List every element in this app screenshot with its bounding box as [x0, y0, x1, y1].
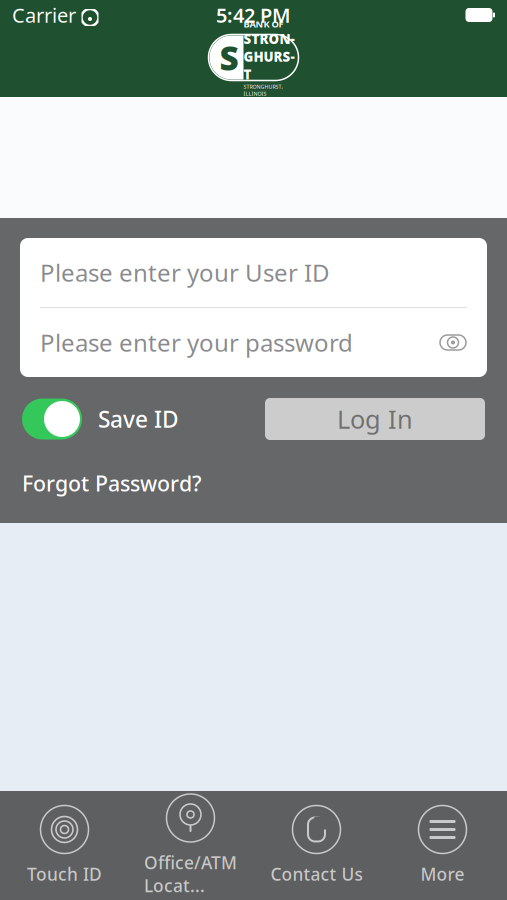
staticText: Touch ID [27, 862, 102, 885]
button[interactable]: Office/ATM Locat... [127, 800, 253, 890]
button[interactable]: Touch ID [1, 800, 127, 890]
button[interactable]: Please enter your User ID [20, 238, 487, 307]
staticText: Please enter your password [40, 327, 353, 358]
button[interactable]: Please enter your password [20, 308, 487, 377]
staticText: More [420, 862, 464, 885]
button[interactable]: Forgot Password? [22, 469, 202, 497]
staticText: Save ID [98, 404, 179, 434]
staticText: Carrier [12, 2, 76, 28]
staticText: BANK OF [243, 18, 283, 30]
button[interactable]: Save ID [22, 398, 179, 439]
staticText: STRONGHURST, ILLINOIS [243, 83, 282, 97]
staticText: STRONGHURST [243, 30, 294, 83]
staticText: Office/ATM Locat... [144, 851, 237, 897]
button[interactable]: Contact Us [253, 800, 379, 890]
staticText: Forgot Password? [22, 469, 202, 497]
button[interactable]: More [379, 800, 505, 890]
staticText: Please enter your User ID [40, 257, 330, 288]
staticText: 5:42 PM [216, 2, 291, 28]
button[interactable]: Log In [265, 398, 485, 440]
staticText: Contact Us [270, 862, 362, 885]
staticText: S [219, 35, 238, 80]
staticText: Log In [337, 402, 413, 436]
